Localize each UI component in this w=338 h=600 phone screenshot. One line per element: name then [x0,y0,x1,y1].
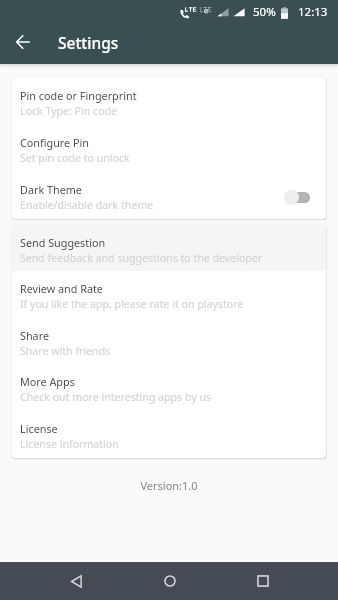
staticText: Dark Theme [20,182,82,197]
staticText: Send feedback and suggestions to the dev… [20,251,263,265]
staticText: Pin code or Fingerprint [20,88,137,103]
staticText: Settings [58,32,119,53]
button[interactable]: Review and Rate [12,271,326,318]
button[interactable]: Recent apps [216,562,309,600]
staticText: 12:13 [298,4,328,20]
button[interactable]: More Apps [12,364,326,411]
button[interactable]: Dark Theme [12,172,326,219]
staticText: Set pin code to unlock [20,151,130,165]
button[interactable]: Home [123,562,216,600]
staticText: Share with friends [20,344,111,358]
staticText: License [20,421,58,436]
button[interactable]: Back [30,562,123,600]
button[interactable]: Navigate up [8,27,38,57]
button[interactable]: License [12,411,326,458]
button[interactable]: Send Suggestion [12,225,326,271]
button[interactable]: Pin code or Fingerprint [12,78,326,125]
staticText: Send Suggestion [20,235,106,250]
staticText: Share [20,328,49,343]
staticText: Enable/disable dark theme [20,198,154,212]
staticText: 50% [253,4,276,20]
staticText: Configure Pin [20,135,89,150]
button[interactable]: Share [12,318,326,364]
staticText: Lock Type: Pin code [20,104,118,118]
staticText: License information [20,437,119,451]
button[interactable]: Configure Pin [12,125,326,172]
staticText: More Apps [20,374,75,389]
staticText: If you like the app, please rate it on p… [20,297,244,311]
staticText: Check out more interesting apps by us [20,390,212,404]
staticText: Review and Rate [20,281,103,296]
staticText: Version:1.0 [0,478,338,493]
